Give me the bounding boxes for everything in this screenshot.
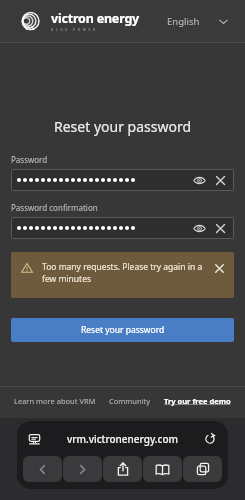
button[interactable]: Clear password [213, 221, 227, 235]
button[interactable]: Reload [201, 430, 219, 448]
staticText: B L U E P O W E R [51, 28, 96, 32]
button[interactable]: Back [23, 456, 62, 482]
button[interactable]: English [163, 11, 233, 32]
button[interactable]: Clear password [213, 173, 227, 187]
button[interactable]: Learn more about VRM [14, 396, 96, 406]
button[interactable]: Try our free demo [164, 396, 231, 406]
button[interactable]: Dismiss alert [212, 261, 226, 275]
staticText: vrm.victronenergy.com [67, 432, 178, 446]
button[interactable]: Show password [11, 169, 234, 191]
staticText: Learn more about VRM [14, 396, 96, 406]
staticText: Password [11, 154, 48, 165]
button[interactable]: Tabs [183, 456, 222, 482]
button[interactable]: Bookmarks [143, 456, 182, 482]
staticText: English [167, 15, 200, 28]
button[interactable]: Show password [11, 217, 234, 239]
staticText: Password confirmation [11, 202, 98, 213]
staticText: Reset your password [81, 324, 165, 336]
staticText: Community [109, 396, 151, 406]
staticText: Too many requests. Please try again in a… [42, 261, 206, 285]
button[interactable]: Community [109, 396, 151, 406]
staticText: Try our free demo [164, 396, 231, 406]
button[interactable]: Reset your password [11, 318, 234, 342]
staticText: Reset your password [0, 117, 245, 136]
button[interactable]: Forward [63, 456, 102, 482]
staticText: victron energy [51, 10, 140, 27]
button[interactable]: Page settings [25, 430, 43, 448]
button[interactable]: Show password [192, 221, 206, 235]
button[interactable]: Share [103, 456, 142, 482]
button[interactable]: Show password [192, 173, 206, 187]
other: Select language [218, 16, 229, 27]
